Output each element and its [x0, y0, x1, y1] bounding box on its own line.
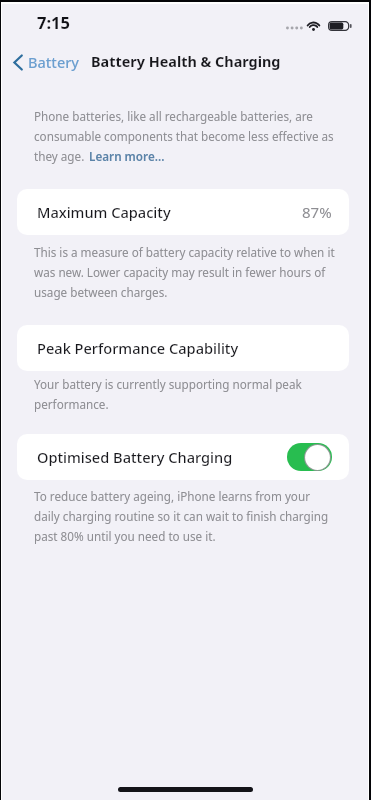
staticText: Peak Performance Capability — [37, 338, 239, 358]
staticText: consumable components that become less e… — [34, 128, 334, 144]
button[interactable]: Peak Performance Capability — [17, 325, 349, 371]
staticText: 87% — [302, 202, 332, 222]
staticText: Phone batteries, like all rechargeable b… — [34, 108, 313, 124]
staticText: This is a measure of battery capacity re… — [34, 244, 335, 260]
button[interactable]: Optimised Battery Charging — [287, 443, 332, 471]
button[interactable]: Optimised Battery Charging — [17, 434, 349, 480]
staticText: was new. Lower capacity may result in fe… — [34, 264, 326, 280]
staticText: Optimised Battery Charging — [37, 447, 233, 467]
button[interactable]: Learn more... — [89, 148, 165, 164]
staticText: daily charging routine so it can wait to… — [34, 508, 329, 524]
staticText: performance. — [34, 396, 109, 412]
staticText: Battery Health & Charging — [91, 52, 281, 72]
staticText: Your battery is currently supporting nor… — [34, 376, 302, 392]
staticText: usage between charges. — [34, 284, 168, 300]
staticText: they age. — [34, 148, 85, 164]
button[interactable]: Back to Battery — [10, 50, 82, 74]
staticText: To reduce battery ageing, iPhone learns … — [34, 488, 310, 504]
button[interactable]: Maximum Capacity — [17, 189, 349, 235]
staticText: 7:15 — [37, 11, 70, 33]
staticText: Battery — [28, 52, 79, 72]
staticText: past 80% until you need to use it. — [34, 528, 216, 544]
staticText: Maximum Capacity — [37, 202, 171, 222]
